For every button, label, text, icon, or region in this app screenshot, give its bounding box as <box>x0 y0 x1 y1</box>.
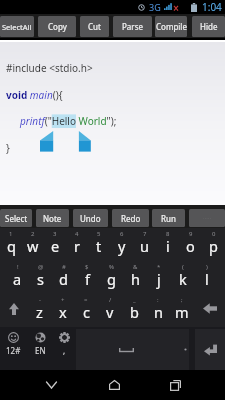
staticText: Redo <box>121 213 141 224</box>
staticText: ( <box>182 263 184 271</box>
button[interactable]: % <box>99 261 123 294</box>
button[interactable]: = <box>74 294 98 327</box>
button[interactable]: Hide <box>192 16 225 37</box>
button[interactable]: ( <box>171 261 195 294</box>
staticText: $ <box>85 263 89 271</box>
staticText: Copy <box>48 21 67 32</box>
button[interactable]: * <box>147 261 171 294</box>
button[interactable]: , <box>53 327 76 370</box>
button[interactable]: EN <box>27 327 53 370</box>
button[interactable]: 4 <box>66 228 88 261</box>
staticText: * <box>157 263 161 271</box>
button[interactable]: Note <box>36 209 69 227</box>
button[interactable]: Home <box>100 371 128 399</box>
button[interactable]: & <box>123 261 147 294</box>
button[interactable]: 6 <box>110 228 133 261</box>
button[interactable]: # <box>52 261 75 294</box>
staticText: void main(){ <box>6 88 63 102</box>
staticText: ) <box>206 263 208 271</box>
button[interactable]: Enter <box>195 329 225 370</box>
button[interactable]: 0 <box>202 228 225 261</box>
button[interactable]: 1 <box>0 228 22 261</box>
button[interactable]: Redo <box>112 209 149 227</box>
staticText: n <box>154 302 163 322</box>
button[interactable]: Space <box>76 329 189 370</box>
button[interactable]: 7 <box>133 228 156 261</box>
staticText: SelectAll <box>2 22 32 32</box>
staticText: Undo <box>80 213 101 224</box>
staticText: Hide <box>200 21 218 32</box>
staticText: = <box>84 296 88 304</box>
button[interactable]: 2 <box>22 228 44 261</box>
button[interactable]: Cut <box>80 16 109 37</box>
staticText: Cut <box>88 21 101 32</box>
button[interactable]: Parse <box>113 16 152 37</box>
button[interactable]: Run <box>152 209 185 227</box>
button[interactable]: 5 <box>88 228 110 261</box>
staticText: u <box>140 236 149 256</box>
staticText: y <box>118 236 126 256</box>
staticText: Note <box>43 213 62 224</box>
button[interactable]: 9 <box>179 228 202 261</box>
button[interactable]: Recent apps <box>161 371 189 399</box>
staticText: 3G <box>149 1 161 13</box>
staticText: p <box>209 236 218 256</box>
button[interactable]: / <box>98 294 122 327</box>
button[interactable]: 8 <box>156 228 179 261</box>
staticText: v <box>106 302 114 322</box>
staticText: q <box>7 236 16 256</box>
button[interactable]: ) <box>195 261 219 294</box>
staticText: EN <box>35 345 46 356</box>
staticText: printf("Hello World"); <box>20 114 117 128</box>
staticText: - <box>39 296 41 304</box>
staticText: } <box>6 141 10 155</box>
button[interactable]: + <box>51 294 74 327</box>
button[interactable]: : <box>146 294 170 327</box>
button[interactable]: Undo <box>73 209 108 227</box>
staticText: z <box>36 302 43 322</box>
staticText: x <box>59 302 67 322</box>
staticText: & <box>133 263 138 271</box>
button[interactable]: _ <box>122 294 146 327</box>
staticText: a <box>13 269 22 289</box>
button[interactable]: Back <box>37 371 65 399</box>
button[interactable]: ! <box>6 261 29 294</box>
staticText: _ <box>133 296 136 304</box>
staticText: Parse <box>122 21 143 32</box>
staticText: t <box>96 236 102 256</box>
button[interactable]: SelectAll <box>0 16 34 37</box>
button[interactable]: Compile <box>155 16 187 37</box>
button[interactable]: Copy <box>38 16 76 37</box>
staticText: w <box>27 236 39 256</box>
staticText: 8 <box>166 230 170 238</box>
button[interactable]: Backspace <box>194 294 225 327</box>
staticText: : <box>157 296 159 304</box>
button[interactable]: 12# <box>0 327 27 370</box>
staticText: j <box>157 269 161 289</box>
staticText: b <box>130 302 139 322</box>
button[interactable]: - <box>28 294 51 327</box>
staticText: 4 <box>75 230 79 238</box>
staticText: h <box>131 269 140 289</box>
button[interactable]: Select <box>0 209 32 227</box>
staticText: 9 <box>189 230 193 238</box>
staticText: 1:04 <box>202 0 222 14</box>
button[interactable]: ; <box>170 294 194 327</box>
staticText: 6 <box>120 230 124 238</box>
button[interactable]: @ <box>29 261 52 294</box>
staticText: 7 <box>143 230 147 238</box>
staticText: g <box>107 269 116 289</box>
staticText: @ <box>38 263 44 271</box>
button[interactable]: 3 <box>44 228 66 261</box>
staticText: ! <box>17 263 19 271</box>
staticText: , <box>63 345 66 356</box>
staticText: f <box>85 269 90 289</box>
button[interactable]: $ <box>75 261 99 294</box>
staticText: + <box>61 296 65 304</box>
button[interactable]: Shift <box>0 294 28 327</box>
staticText: 0 <box>212 230 216 238</box>
staticText: l <box>205 269 209 289</box>
staticText: i <box>166 236 170 256</box>
